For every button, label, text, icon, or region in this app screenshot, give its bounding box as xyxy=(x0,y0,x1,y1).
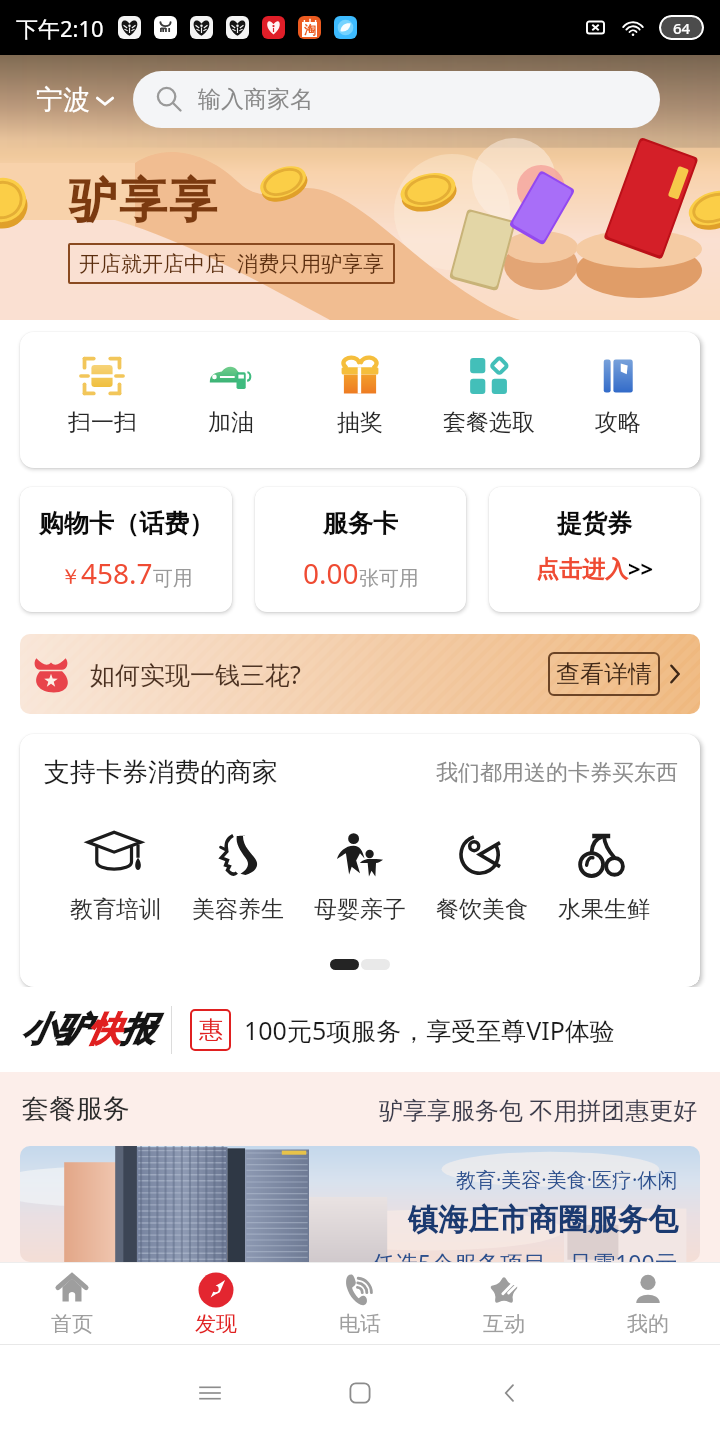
button[interactable]: 电话 xyxy=(288,1263,432,1344)
staticText: 套餐服务 xyxy=(22,1092,130,1126)
button[interactable]: 攻略 xyxy=(553,352,682,437)
staticText: 任选5个服务项目，只需100元 xyxy=(372,1247,678,1262)
staticText: 教育培训 xyxy=(70,895,162,924)
button[interactable]: 服务卡 xyxy=(255,487,466,612)
staticText: 电话 xyxy=(339,1311,381,1337)
button[interactable]: 宁波 xyxy=(36,83,117,117)
staticText: 母婴亲子 xyxy=(314,895,406,924)
button[interactable]: 水果生鲜 xyxy=(543,821,665,924)
staticText: 报 xyxy=(120,1008,153,1051)
button[interactable]: Recent apps xyxy=(186,1369,234,1417)
button[interactable]: 输入商家名 xyxy=(133,71,660,128)
button[interactable]: 查看详情 xyxy=(548,652,660,696)
button[interactable]: 抽奖 xyxy=(295,352,424,437)
staticText: 镇海庄市商圈服务包 xyxy=(408,1201,678,1239)
button[interactable]: Home xyxy=(336,1369,384,1417)
staticText: 输入商家名 xyxy=(198,85,313,114)
staticText: 宁波 xyxy=(36,83,90,117)
staticText: 张可用 xyxy=(359,566,419,591)
staticText: 首页 xyxy=(51,1311,93,1337)
staticText: 扫一扫 xyxy=(68,408,137,437)
staticText: 提货券 xyxy=(557,508,632,539)
button[interactable]: Back xyxy=(486,1369,534,1417)
staticText: >> xyxy=(628,553,654,583)
button[interactable]: 母婴亲子 xyxy=(299,821,421,924)
staticText: 支持卡券消费的商家 xyxy=(44,756,278,789)
staticText: ￥ xyxy=(60,564,81,590)
button[interactable]: 我的 xyxy=(576,1263,720,1344)
staticText: 快 xyxy=(87,1008,120,1051)
button[interactable]: 如何实现一钱三花? xyxy=(20,634,700,714)
staticText: 0.00 xyxy=(303,554,359,592)
button[interactable]: 套餐选取 xyxy=(424,352,553,437)
staticText: 查看详情 xyxy=(556,659,652,689)
staticText: 教育·美容·美食·医疗·休闲 xyxy=(456,1166,678,1193)
staticText: 发现 xyxy=(195,1311,237,1337)
button[interactable]: 小驴 xyxy=(0,987,720,1072)
staticText: 458.7 xyxy=(81,554,153,592)
button[interactable]: 扫一扫 xyxy=(38,352,166,437)
staticText: 购物卡（话费） xyxy=(39,508,214,539)
button[interactable]: 教育培训 xyxy=(55,821,177,924)
staticText: 套餐选取 xyxy=(443,408,535,437)
button[interactable]: 餐饮美食 xyxy=(421,821,543,924)
staticText: 攻略 xyxy=(595,408,641,437)
button[interactable]: 美容养生 xyxy=(177,821,299,924)
button[interactable]: 加油 xyxy=(166,352,295,437)
button[interactable]: 购物卡（话费） xyxy=(20,487,232,612)
staticText: 美容养生 xyxy=(192,895,284,924)
staticText: 互动 xyxy=(483,1311,525,1337)
staticText: 我的 xyxy=(627,1311,669,1337)
staticText: 水果生鲜 xyxy=(558,895,650,924)
staticText: 小驴 xyxy=(22,1008,87,1051)
staticText: 驴享享服务包 不用拼团惠更好 xyxy=(379,1093,698,1126)
staticText: 64 xyxy=(673,18,691,38)
staticText: 我们都用送的卡券买东西 xyxy=(436,759,678,787)
staticText: 如何实现一钱三花? xyxy=(90,657,301,691)
staticText: 下午2:10 xyxy=(16,13,104,43)
staticText: 可用 xyxy=(153,566,193,591)
button[interactable]: 发现 xyxy=(144,1263,288,1344)
staticText: 开店就开店中店 消费只用驴享享 xyxy=(79,249,384,278)
button[interactable]: 提货券 xyxy=(489,487,700,612)
button[interactable]: 互动 xyxy=(432,1263,576,1344)
button[interactable]: 首页 xyxy=(0,1263,144,1344)
staticText: 加油 xyxy=(208,408,254,437)
staticText: 点击进入 xyxy=(536,555,628,584)
button[interactable]: 教育·美容·美食·医疗·休闲 xyxy=(20,1146,700,1262)
staticText: 餐饮美食 xyxy=(436,895,528,924)
staticText: 抽奖 xyxy=(337,408,383,437)
staticText: 惠 xyxy=(199,1015,223,1045)
staticText: 服务卡 xyxy=(323,508,398,539)
staticText: 淘 xyxy=(304,22,316,37)
staticText: 100元5项服务，享受至尊VIP体验 xyxy=(244,1013,615,1047)
staticText: 驴享享 xyxy=(68,171,218,231)
